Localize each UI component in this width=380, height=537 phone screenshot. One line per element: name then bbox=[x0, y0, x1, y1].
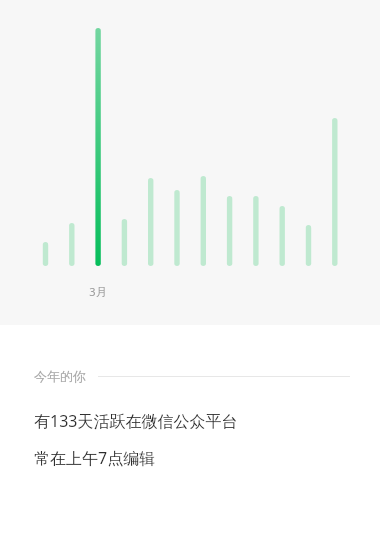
staticText: 3月 bbox=[78, 284, 118, 299]
staticText: 常在上午7点编辑 bbox=[34, 447, 156, 469]
staticText: 今年的你 bbox=[34, 368, 86, 384]
staticText: 有133天活跃在微信公众平台 bbox=[34, 410, 238, 432]
